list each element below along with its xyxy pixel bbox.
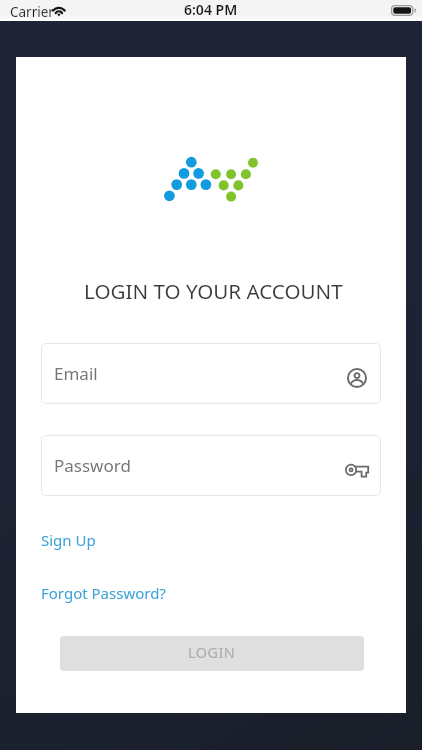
staticText: 6:04 PM [184, 0, 238, 19]
staticText: LOGIN TO YOUR ACCOUNT [84, 277, 343, 305]
staticText: LOGIN [188, 643, 236, 663]
staticText: Forgot Password? [41, 583, 166, 603]
staticText: Password [54, 454, 131, 477]
staticText: Sign Up [41, 530, 96, 550]
other: Account [347, 368, 367, 388]
button[interactable]: Sign Up [36, 526, 101, 554]
button[interactable]: Password [41, 435, 381, 496]
button[interactable]: Forgot Password? [36, 579, 171, 607]
button[interactable]: Email [41, 343, 381, 404]
staticText: Carrier [10, 3, 54, 21]
other: Password [345, 463, 369, 478]
staticText: Email [54, 362, 98, 385]
button[interactable]: LOGIN [60, 636, 364, 671]
